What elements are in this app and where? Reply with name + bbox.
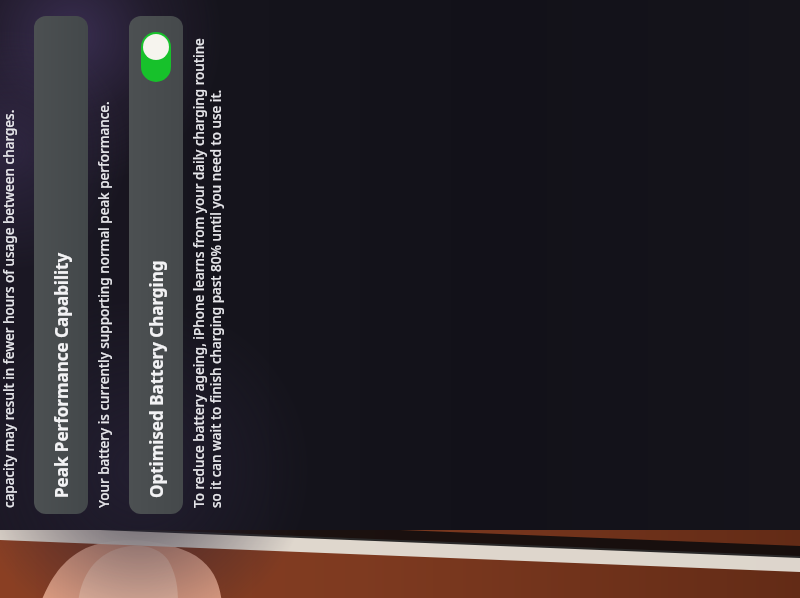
staticText: Phone batteries, like all rechargeable b…	[122, 22, 159, 508]
button[interactable]: Maximum Capacity	[192, 16, 246, 514]
staticText: Battery	[46, 436, 69, 495]
button[interactable]: Back to Battery	[40, 0, 74, 518]
staticText: Maximum Capacity	[208, 335, 231, 498]
staticText: Learn more...	[159, 419, 178, 508]
staticText: 4:42	[9, 462, 32, 496]
staticText: Battery Health & Charging	[76, 178, 110, 508]
button[interactable]: Learn more...	[159, 419, 178, 508]
